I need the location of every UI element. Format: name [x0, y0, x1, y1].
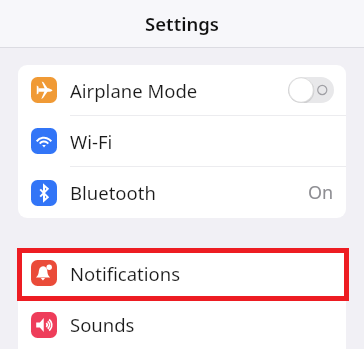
button[interactable]: Bluetooth: [18, 167, 346, 218]
staticText: Airplane Mode: [70, 78, 198, 103]
button[interactable]: Airplane Mode toggle, off: [288, 77, 334, 103]
other: Bluetooth: [31, 180, 57, 206]
other: Airplane Mode: [31, 77, 57, 103]
staticText: Settings: [145, 11, 219, 36]
staticText: Notifications: [70, 261, 181, 286]
other: Notifications: [31, 260, 57, 286]
button[interactable]: Airplane Mode: [18, 65, 346, 116]
staticText: Wi-Fi: [70, 129, 113, 154]
other: Wi-Fi: [31, 128, 57, 154]
other: Sounds: [31, 312, 57, 338]
button[interactable]: Wi-Fi: [18, 116, 346, 167]
button[interactable]: Notifications: [18, 248, 346, 299]
staticText: Bluetooth: [70, 180, 156, 205]
staticText: Sounds: [70, 312, 135, 337]
button[interactable]: Sounds: [18, 299, 346, 349]
staticText: On: [308, 180, 334, 205]
